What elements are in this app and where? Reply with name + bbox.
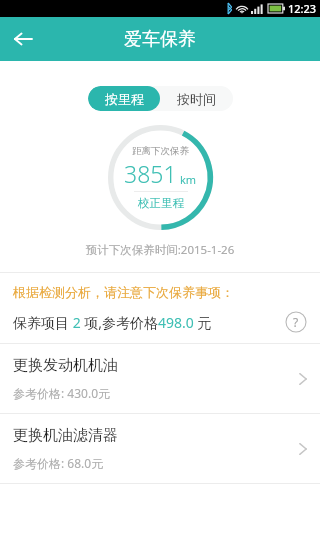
- button[interactable]: 按里程: [88, 86, 160, 111]
- staticText: 保养项目 2 项,参考价格498.0 元: [13, 313, 285, 332]
- staticText: 距离下次保养: [132, 145, 189, 157]
- button[interactable]: 更换机油滤清器: [0, 414, 320, 483]
- staticText: 按时间: [177, 91, 216, 107]
- button[interactable]: 校正里程: [138, 196, 184, 210]
- button[interactable]: 更换发动机机油: [0, 344, 320, 413]
- staticText: km: [180, 172, 197, 187]
- staticText: 参考价格: 68.0元: [13, 455, 104, 471]
- staticText: 根据检测分析，请注意下次保养事项：: [13, 284, 234, 300]
- staticText: 爱车保养: [124, 28, 196, 51]
- staticText: 校正里程: [138, 196, 184, 210]
- staticText: 12:23: [288, 1, 317, 16]
- staticText: 按里程: [105, 91, 144, 107]
- staticText: 预计下次保养时间:2015-1-26: [0, 242, 320, 258]
- staticText: ?: [293, 314, 299, 330]
- staticText: 更换发动机机油: [13, 356, 118, 375]
- button[interactable]: Help: [285, 311, 307, 333]
- button[interactable]: Back: [0, 17, 44, 61]
- staticText: 3851: [124, 158, 177, 189]
- staticText: 更换机油滤清器: [13, 426, 118, 445]
- button[interactable]: 按时间: [160, 86, 233, 111]
- staticText: 参考价格: 430.0元: [13, 385, 111, 401]
